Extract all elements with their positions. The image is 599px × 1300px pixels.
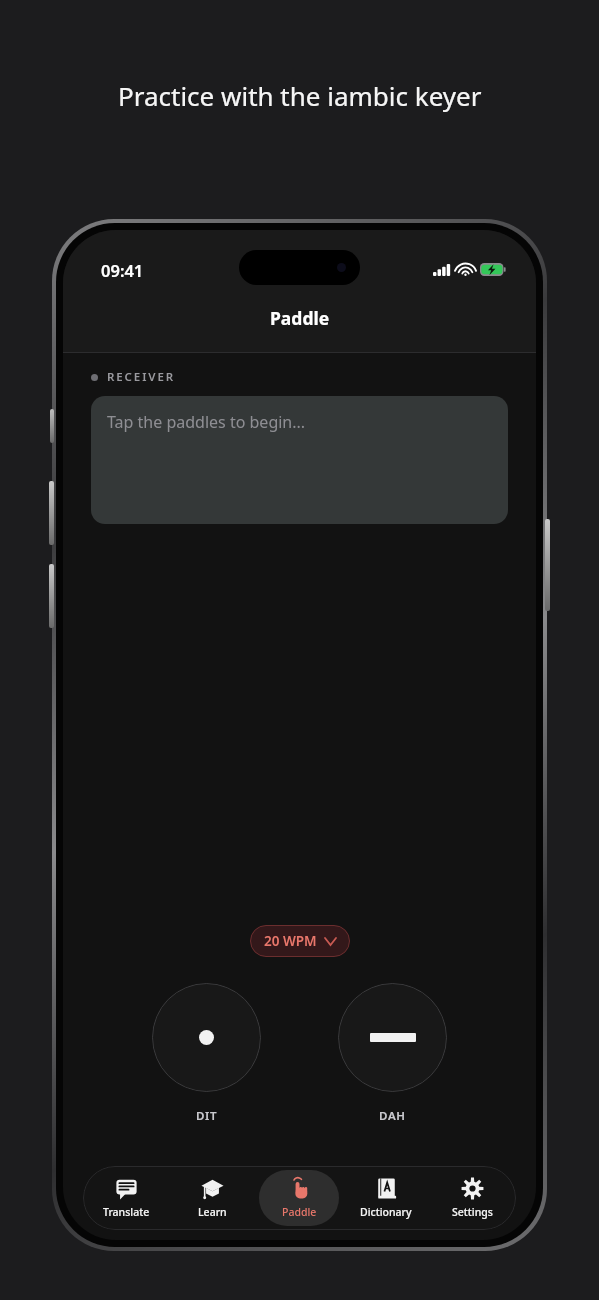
staticText: RECEIVER — [107, 369, 176, 385]
button[interactable]: DAH — [338, 983, 447, 1092]
button[interactable]: DIT — [152, 983, 261, 1092]
staticText: DIT — [196, 1108, 218, 1124]
button[interactable]: 20 WPM — [250, 925, 350, 957]
staticText: Paddle — [282, 1205, 317, 1219]
button[interactable]: Tap the paddles to begin... — [91, 396, 508, 524]
staticText: Practice with the iambic keyer — [118, 78, 482, 113]
staticText: Translate — [103, 1205, 150, 1219]
staticText: Learn — [198, 1205, 227, 1219]
button[interactable]: Paddle — [259, 1170, 339, 1226]
button[interactable]: Dictionary — [356, 1171, 416, 1225]
staticText: DAH — [379, 1108, 406, 1124]
staticText: Paddle — [270, 306, 330, 330]
staticText: 09:41 — [101, 259, 144, 281]
button[interactable]: Learn — [194, 1171, 231, 1225]
button[interactable]: Translate — [99, 1171, 154, 1225]
staticText: Settings — [452, 1205, 493, 1219]
staticText: Dictionary — [360, 1205, 412, 1219]
staticText: Tap the paddles to begin... — [107, 411, 306, 433]
staticText: 20 WPM — [264, 932, 317, 950]
button[interactable]: Settings — [448, 1171, 497, 1225]
